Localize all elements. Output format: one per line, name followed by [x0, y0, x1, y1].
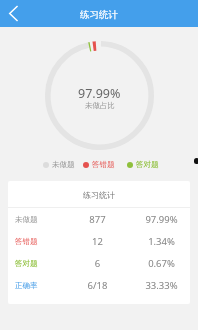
button[interactable]: 正确率	[8, 274, 190, 296]
staticText: 答错题	[15, 237, 62, 246]
staticText: 正确率	[15, 281, 62, 290]
button[interactable]: 未做题	[43, 160, 75, 169]
button[interactable]: 未做题	[8, 208, 190, 230]
staticText: 877	[62, 213, 133, 226]
staticText: 未做占比	[85, 101, 115, 110]
staticText: 0.67%	[133, 257, 190, 270]
button[interactable]: 答对题	[127, 160, 159, 169]
staticText: 6/18	[62, 279, 133, 292]
button[interactable]: 答错题	[8, 230, 190, 252]
staticText: 未做题	[15, 215, 62, 224]
staticText: 未做题	[52, 160, 75, 169]
staticText: 答对题	[136, 160, 159, 169]
staticText: 33.33%	[133, 279, 190, 292]
staticText: 12	[62, 235, 133, 248]
button[interactable]: Back	[0, 0, 27, 27]
staticText: 答对题	[15, 259, 62, 268]
button[interactable]: 答错题	[83, 160, 115, 169]
staticText: 答错题	[92, 160, 115, 169]
staticText: 6	[62, 257, 133, 270]
staticText: 97.99%	[78, 85, 121, 102]
staticText: 练习统计	[80, 9, 118, 21]
staticText: 97.99%	[133, 213, 190, 226]
staticText: 1.34%	[133, 235, 190, 248]
button[interactable]: 答对题	[8, 252, 190, 274]
staticText: 练习统计	[83, 190, 115, 200]
